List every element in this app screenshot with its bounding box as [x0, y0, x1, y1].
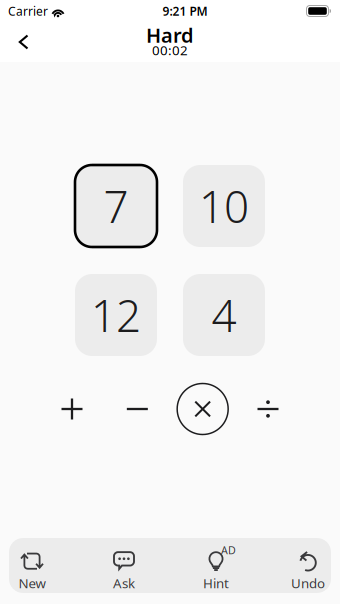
button[interactable]: 4 [183, 274, 265, 356]
button[interactable]: Plus [44, 381, 100, 437]
staticText: 7 [103, 177, 128, 235]
staticText: 12 [91, 286, 141, 344]
button[interactable]: 7 [75, 165, 157, 247]
staticText: 00:02 [152, 41, 188, 59]
button[interactable]: Multiply [175, 381, 231, 437]
button[interactable]: Divide [240, 381, 296, 437]
staticText: Undo [291, 574, 325, 592]
staticText: Ask [113, 574, 135, 592]
button[interactable]: Ask [101, 536, 147, 595]
staticText: New [18, 574, 45, 592]
staticText: AD [221, 543, 236, 557]
button[interactable]: New [9, 536, 55, 595]
staticText: 9:21 PM [162, 3, 207, 19]
button[interactable]: Undo [285, 536, 331, 595]
button[interactable]: Minus [109, 381, 165, 437]
staticText: 4 [211, 286, 236, 344]
staticText: Carrier [8, 3, 48, 19]
button[interactable]: 12 [75, 274, 157, 356]
button[interactable]: 10 [183, 165, 265, 247]
button[interactable]: AD [193, 536, 239, 595]
button[interactable]: Back [0, 25, 43, 59]
staticText: Hard [146, 22, 194, 48]
staticText: Hint [203, 574, 229, 592]
staticText: 10 [199, 177, 249, 235]
